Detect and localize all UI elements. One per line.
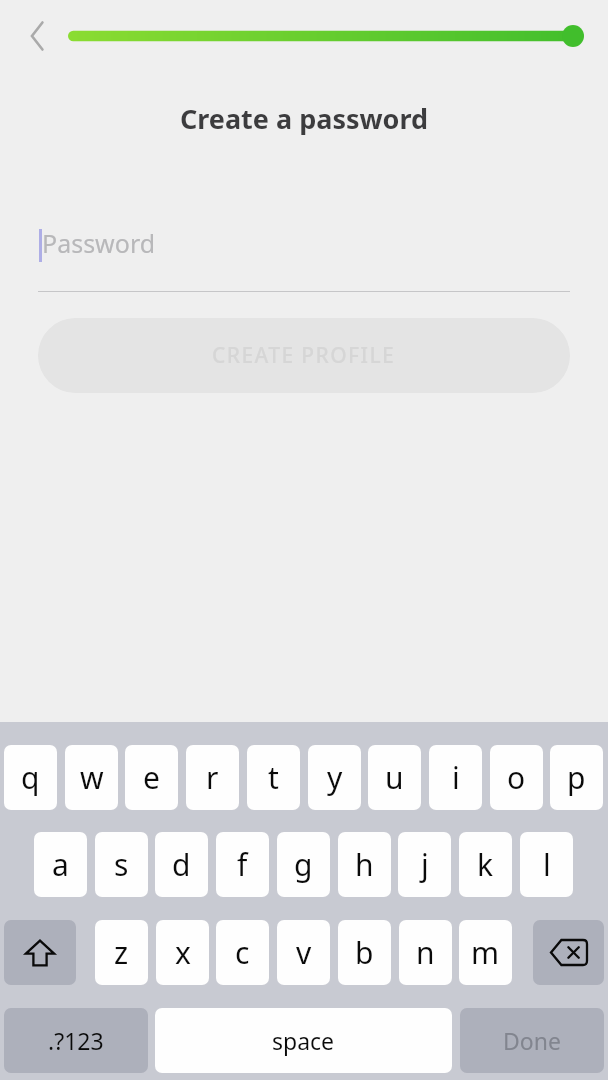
button[interactable]: y bbox=[308, 745, 361, 810]
staticText: w bbox=[80, 757, 104, 798]
staticText: CREATE PROFILE bbox=[212, 341, 396, 370]
staticText: d bbox=[172, 844, 191, 885]
button[interactable]: .?123 bbox=[4, 1008, 148, 1073]
staticText: Password bbox=[42, 226, 156, 260]
button[interactable]: Done bbox=[460, 1008, 604, 1073]
button[interactable]: x bbox=[156, 920, 209, 985]
staticText: z bbox=[114, 932, 129, 973]
staticText: o bbox=[507, 757, 526, 798]
button[interactable]: m bbox=[459, 920, 512, 985]
staticText: l bbox=[543, 844, 551, 885]
button[interactable]: z bbox=[95, 920, 148, 985]
button[interactable]: e bbox=[125, 745, 178, 810]
staticText: Create a password bbox=[0, 100, 608, 137]
staticText: x bbox=[175, 932, 191, 973]
button[interactable]: a bbox=[34, 832, 87, 897]
staticText: q bbox=[21, 757, 40, 798]
button[interactable]: q bbox=[4, 745, 57, 810]
staticText: u bbox=[385, 757, 404, 798]
button[interactable]: d bbox=[155, 832, 208, 897]
staticText: k bbox=[477, 844, 494, 885]
staticText: n bbox=[416, 932, 435, 973]
button[interactable]: n bbox=[399, 920, 452, 985]
button[interactable]: k bbox=[459, 832, 512, 897]
button[interactable]: b bbox=[338, 920, 391, 985]
staticText: r bbox=[206, 757, 219, 798]
staticText: j bbox=[421, 844, 429, 885]
staticText: p bbox=[567, 757, 586, 798]
staticText: Done bbox=[503, 1025, 561, 1056]
button[interactable]: p bbox=[550, 745, 603, 810]
staticText: h bbox=[355, 844, 374, 885]
staticText: e bbox=[143, 757, 160, 798]
button[interactable]: i bbox=[429, 745, 482, 810]
button[interactable]: v bbox=[277, 920, 330, 985]
staticText: c bbox=[235, 932, 250, 973]
button[interactable]: Back bbox=[6, 6, 66, 66]
staticText: m bbox=[471, 932, 500, 973]
button[interactable]: j bbox=[398, 832, 451, 897]
button[interactable]: h bbox=[338, 832, 391, 897]
button[interactable]: t bbox=[247, 745, 300, 810]
button[interactable]: o bbox=[490, 745, 543, 810]
button[interactable]: Shift bbox=[4, 920, 76, 985]
button[interactable]: r bbox=[186, 745, 239, 810]
staticText: .?123 bbox=[48, 1025, 104, 1056]
button[interactable]: l bbox=[520, 832, 573, 897]
button[interactable]: Backspace bbox=[533, 920, 604, 985]
button[interactable]: f bbox=[216, 832, 269, 897]
staticText: v bbox=[296, 932, 312, 973]
staticText: f bbox=[237, 844, 248, 885]
staticText: a bbox=[52, 844, 69, 885]
button[interactable]: g bbox=[277, 832, 330, 897]
staticText: g bbox=[294, 844, 313, 885]
staticText: y bbox=[327, 757, 343, 798]
button[interactable]: s bbox=[95, 832, 148, 897]
button[interactable]: w bbox=[65, 745, 118, 810]
staticText: b bbox=[355, 932, 374, 973]
staticText: s bbox=[114, 844, 129, 885]
button[interactable]: u bbox=[368, 745, 421, 810]
staticText: space bbox=[272, 1025, 335, 1056]
button[interactable]: space bbox=[155, 1008, 452, 1073]
staticText: i bbox=[452, 757, 460, 798]
button[interactable]: Password bbox=[38, 220, 570, 292]
button[interactable]: c bbox=[216, 920, 269, 985]
staticText: t bbox=[268, 757, 279, 798]
